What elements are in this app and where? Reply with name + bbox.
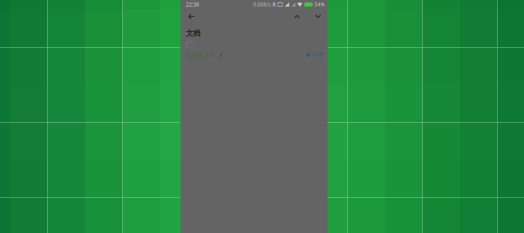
staticText: 1 xyxy=(225,51,228,59)
button[interactable]: Next result xyxy=(310,9,326,24)
staticText: 54% xyxy=(314,1,324,8)
staticText: 0.00K/s xyxy=(253,1,270,8)
staticText: 123 xyxy=(187,42,193,47)
staticText: 详情 xyxy=(312,51,324,58)
staticText: 22:38 xyxy=(186,1,199,8)
staticText: R xyxy=(273,1,276,8)
button[interactable]: Previous result xyxy=(289,9,305,24)
button[interactable]: Back xyxy=(182,9,199,24)
staticText: 文档 xyxy=(186,28,200,38)
staticText: 选择它文件 xyxy=(186,51,216,58)
